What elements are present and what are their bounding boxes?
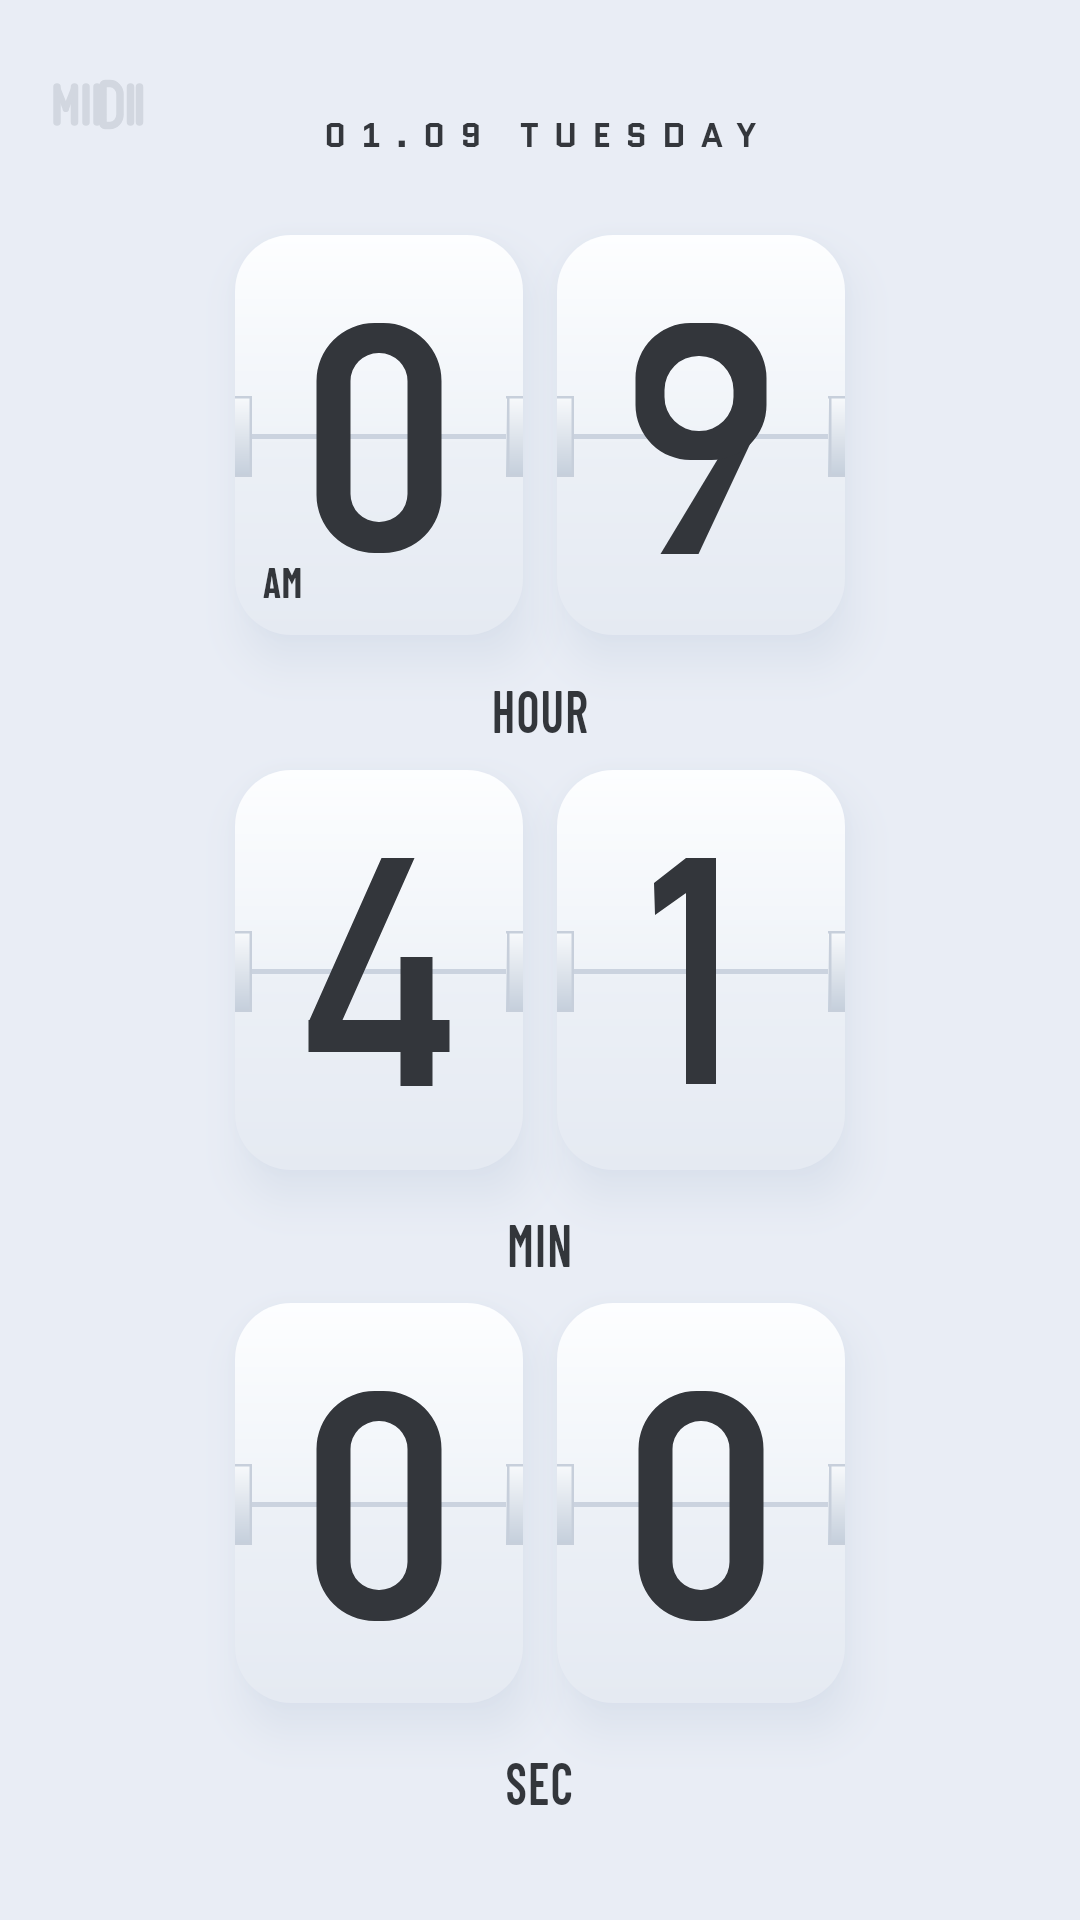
button[interactable] — [557, 1303, 845, 1703]
staticText: HOUR — [492, 673, 589, 745]
staticText: AM — [263, 556, 303, 606]
staticText: SEC — [506, 1745, 574, 1817]
button[interactable] — [557, 770, 845, 1170]
button[interactable] — [235, 1303, 523, 1703]
staticText: MIN — [507, 1207, 574, 1279]
button[interactable] — [557, 235, 845, 635]
button[interactable]: AM — [235, 235, 523, 635]
staticText: 01.09 TUESDAY — [324, 112, 772, 156]
button[interactable] — [235, 770, 523, 1170]
